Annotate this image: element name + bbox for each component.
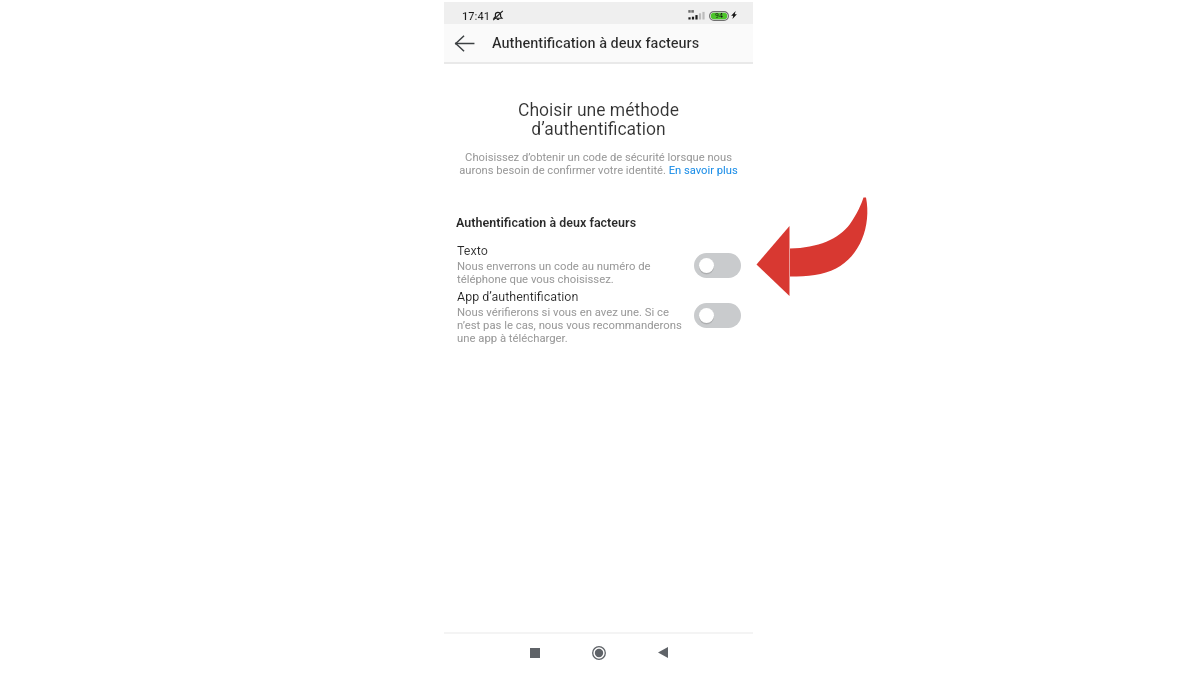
button[interactable]: Home — [579, 634, 619, 671]
button[interactable]: Toggle — [694, 303, 741, 328]
staticText: Texto — [457, 243, 488, 258]
staticText: App d’authentification — [457, 289, 579, 304]
staticText: Authentification à deux facteurs — [456, 215, 637, 230]
button[interactable]: Back — [449, 28, 480, 59]
staticText: Authentification à deux facteurs — [492, 35, 700, 52]
button[interactable]: Texto — [444, 243, 753, 286]
staticText: Nous enverrons un code au numéro de télé… — [457, 260, 651, 286]
staticText: Choisissez d’obtenir un code de sécurité… — [447, 151, 750, 176]
button[interactable]: Recent apps — [515, 634, 555, 671]
button[interactable]: App d’authentification — [444, 289, 753, 345]
staticText: 94 — [715, 12, 723, 20]
staticText: Nous vérifierons si vous en avez une. Si… — [457, 306, 682, 345]
staticText: Choisir une méthode d’authentification — [452, 100, 745, 140]
button[interactable]: Toggle — [694, 253, 741, 278]
button[interactable]: Back — [643, 634, 683, 671]
staticText: 17:41 — [462, 10, 490, 23]
